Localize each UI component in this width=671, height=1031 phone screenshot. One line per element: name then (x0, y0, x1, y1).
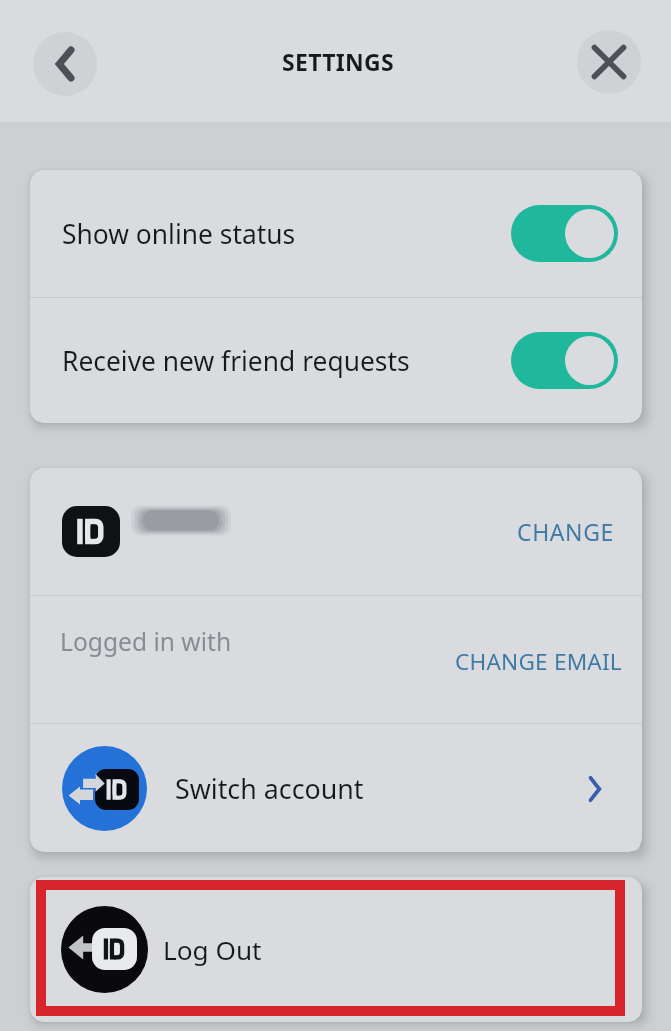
button[interactable]: Back (33, 32, 97, 96)
staticText: SETTINGS (282, 46, 394, 77)
button[interactable]: Show online status (30, 170, 642, 297)
button[interactable]: Open details (581, 775, 609, 803)
button[interactable]: Close (577, 30, 641, 94)
staticText: Log Out (163, 932, 262, 968)
button[interactable]: Logged in with (30, 596, 642, 723)
button[interactable]: Log Out (30, 877, 642, 1022)
button[interactable]: Receive new friend requests (30, 298, 642, 423)
button[interactable]: CHANGE EMAIL (451, 640, 626, 683)
staticText: CHANGE (517, 516, 614, 547)
staticText: Receive new friend requests (62, 343, 410, 379)
button[interactable]: CHANGE (513, 506, 618, 557)
staticText: Switch account (175, 770, 364, 807)
staticText: CHANGE EMAIL (455, 646, 622, 677)
staticText: Show online status (62, 216, 296, 252)
button[interactable]: CHANGE (30, 468, 642, 595)
staticText: Logged in with (60, 625, 232, 659)
button[interactable]: Switch account (30, 724, 642, 852)
